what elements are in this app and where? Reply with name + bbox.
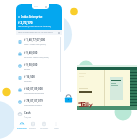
button[interactable]: ₹ 1,40,77,07,000	[16, 35, 62, 48]
button[interactable]: ₹ 78,07,07,079	[16, 96, 62, 108]
staticText: Last synced data as on 12-Oct-2024	[18, 31, 53, 34]
button[interactable]: Vouchers	[38, 120, 50, 131]
staticText: Receipt	[24, 68, 31, 70]
staticText: Outstanding Payable	[24, 104, 42, 106]
staticText: ₹ 2,72,170	[18, 21, 33, 25]
staticText: ₹ 78,07,07,079	[24, 99, 43, 103]
staticText: Indus Enterprise	[21, 15, 43, 19]
staticText: Purchase - Debit Note (Gross)	[24, 56, 49, 58]
other: Secure data	[63, 93, 74, 104]
staticText: ₹ 52,120	[24, 116, 32, 118]
staticText: ₹ 9,50,000	[24, 63, 38, 67]
staticText: ₹ 9,40,000	[24, 51, 38, 55]
button[interactable]: Cash	[16, 108, 62, 120]
staticText: Vouchers	[40, 127, 49, 130]
staticText: Net Profit (1-Apr-24 to 31-Mar-25)	[18, 25, 51, 28]
button[interactable]: Dashboard	[16, 120, 27, 131]
button[interactable]: Reports	[27, 120, 38, 131]
staticText: Sales - Credit Note (Gross)	[24, 43, 46, 45]
button[interactable]: ₹ 60,07,09,000	[16, 84, 62, 96]
staticText: More	[54, 127, 59, 130]
staticText: ₹ 16,500	[24, 75, 35, 79]
staticText: ₹ 60,07,09,000	[24, 87, 43, 91]
button[interactable]: More	[50, 120, 62, 131]
button[interactable]: ₹ 9,40,000	[16, 48, 62, 60]
staticText: Reports	[29, 127, 36, 130]
button[interactable]: ₹ 9,50,000	[16, 60, 62, 72]
staticText: Dashboard	[17, 127, 27, 130]
staticText: Cash	[24, 111, 31, 115]
staticText: ₹ 1,40,77,07,000	[24, 38, 46, 42]
button[interactable]: ₹ 16,500	[16, 72, 62, 84]
staticText: Outstanding Receivable	[24, 92, 45, 94]
staticText: Payment	[24, 80, 32, 82]
